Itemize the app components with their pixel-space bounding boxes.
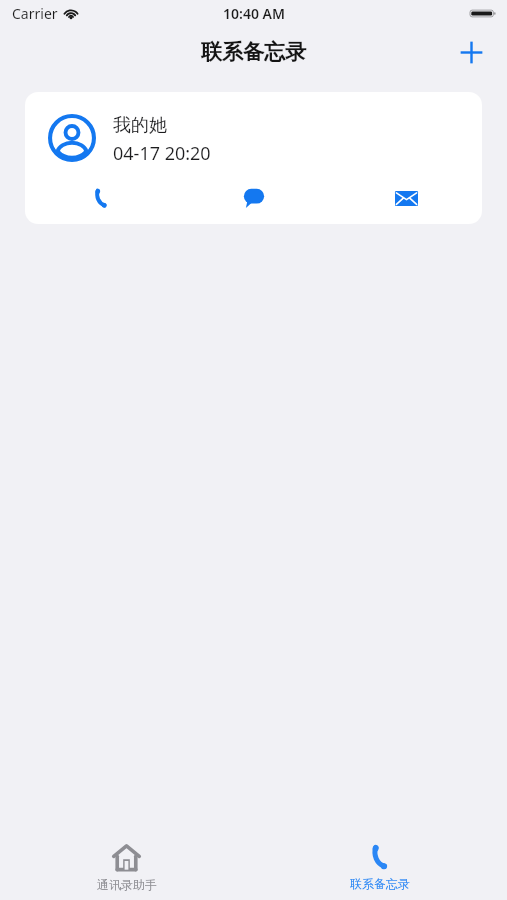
staticText: 10:40 AM [223, 4, 285, 23]
button[interactable]: Add contact memo [449, 30, 493, 74]
button[interactable]: Email [330, 178, 482, 218]
staticText: 通讯录助手 [97, 877, 157, 892]
button[interactable]: Call [25, 178, 178, 218]
staticText: 联系备忘录 [201, 39, 306, 65]
button[interactable]: Message [178, 178, 330, 218]
staticText: Carrier [12, 4, 58, 23]
staticText: 我的她 [113, 114, 167, 137]
button[interactable]: 通讯录助手 [0, 828, 253, 900]
button[interactable]: 联系备忘录 [253, 828, 507, 900]
button[interactable]: 我的她 [25, 92, 482, 224]
staticText: 04-17 20:20 [113, 141, 211, 166]
staticText: 联系备忘录 [350, 876, 410, 891]
